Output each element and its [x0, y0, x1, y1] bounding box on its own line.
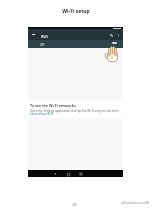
staticText: Wi-Fi setup: [62, 8, 90, 15]
button[interactable]: Search: [109, 33, 114, 38]
button[interactable]: Home: [66, 172, 70, 176]
button[interactable]: Off: [28, 40, 123, 48]
staticText: To see the Wi-Fi networks: [30, 103, 76, 108]
button[interactable]: Recent apps: [79, 172, 83, 176]
staticText: 3/8: [72, 203, 77, 207]
staticText: Off: [40, 43, 45, 47]
staticText: wiki.ubuntu.com/Wi: [121, 201, 150, 205]
button[interactable]: Learn about Wi-Fi: [30, 112, 54, 116]
staticText: 2: [111, 55, 114, 60]
staticText: Wi-Fi: [41, 35, 48, 39]
staticText: Open the Settings application and tap th…: [30, 109, 120, 113]
staticText: Learn about Wi-Fi: [30, 112, 54, 116]
button[interactable]: More options: [116, 33, 120, 37]
button[interactable]: Back: [31, 32, 36, 37]
button[interactable]: Back: [53, 172, 57, 176]
